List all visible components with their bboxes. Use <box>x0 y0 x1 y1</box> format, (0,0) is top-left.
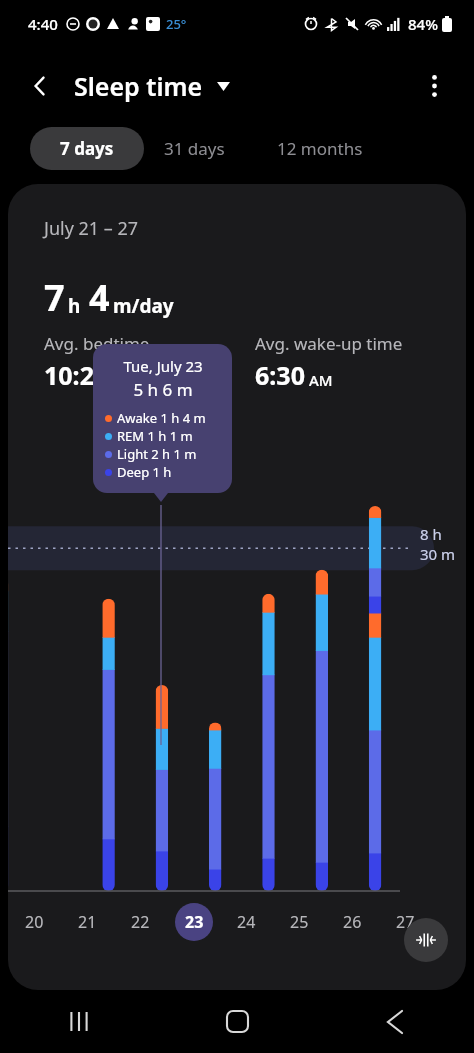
button[interactable]: 24 <box>237 911 256 933</box>
staticText: Tue, July 23 <box>123 356 203 376</box>
button[interactable]: 7 days <box>30 127 144 170</box>
staticText: h <box>68 293 81 319</box>
staticText: m/day <box>113 293 174 319</box>
button[interactable]: Back <box>16 62 64 110</box>
staticText: 12 months <box>277 137 363 160</box>
staticText: AM <box>309 370 333 390</box>
button[interactable]: Collapse chart <box>404 918 448 962</box>
staticText: Awake 1 h 4 m <box>117 409 206 427</box>
staticText: Avg. bedtime <box>44 332 150 355</box>
button[interactable]: 12 months <box>261 127 379 170</box>
staticText: 7 <box>44 273 65 322</box>
staticText: 8 h <box>420 524 442 544</box>
staticText: PM <box>113 370 136 390</box>
button[interactable]: 27 <box>396 911 415 933</box>
staticText: Light 2 h 1 m <box>117 445 197 463</box>
button[interactable]: 25 <box>290 911 309 933</box>
staticText: 23 <box>185 911 204 933</box>
staticText: Sleep time <box>74 69 203 103</box>
staticText: 84% <box>408 14 438 34</box>
button[interactable]: Recents <box>0 990 158 1053</box>
staticText: 4 <box>89 273 110 322</box>
staticText: 25° <box>166 15 187 33</box>
button[interactable]: 23 <box>175 903 213 941</box>
button[interactable]: 31 days <box>144 127 245 170</box>
staticText: 30 m <box>420 544 456 564</box>
button[interactable]: Home <box>158 990 316 1053</box>
button[interactable]: More options <box>412 64 456 108</box>
staticText: 10:24 <box>44 358 109 392</box>
staticText: REM 1 h 1 m <box>117 427 193 445</box>
staticText: Deep 1 h <box>117 463 172 481</box>
staticText: 31 days <box>164 137 225 160</box>
staticText: 4:40 <box>28 14 58 34</box>
staticText: 5 h 6 m <box>133 378 193 401</box>
button[interactable]: 21 <box>78 911 97 933</box>
staticText: 6:30 <box>255 358 305 392</box>
button[interactable]: 20 <box>25 911 44 933</box>
staticText: July 21 – 27 <box>44 216 139 241</box>
button[interactable]: Sleep time <box>74 69 230 103</box>
button[interactable]: Back <box>316 990 474 1053</box>
staticText: 7 days <box>60 137 114 160</box>
staticText: Avg. wake-up time <box>255 332 403 355</box>
button[interactable]: 26 <box>343 911 362 933</box>
button[interactable]: 22 <box>131 911 150 933</box>
